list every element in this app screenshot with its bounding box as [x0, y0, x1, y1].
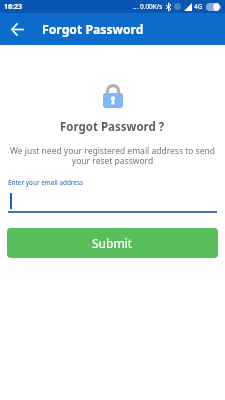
staticText: Submit: [92, 235, 133, 251]
staticText: Forgot Password: [42, 21, 144, 38]
staticText: Forgot Password ?: [60, 119, 165, 135]
staticText: 16:23: [4, 2, 22, 12]
staticText: 4G: [194, 2, 203, 11]
button[interactable]: [8, 191, 217, 213]
staticText: We just need your registered email addre…: [10, 145, 215, 166]
button[interactable]: Submit: [7, 228, 218, 258]
staticText: ... 0.00K/s: [133, 2, 163, 11]
staticText: Enter your email address: [8, 178, 84, 187]
button[interactable]: [0, 13, 34, 45]
